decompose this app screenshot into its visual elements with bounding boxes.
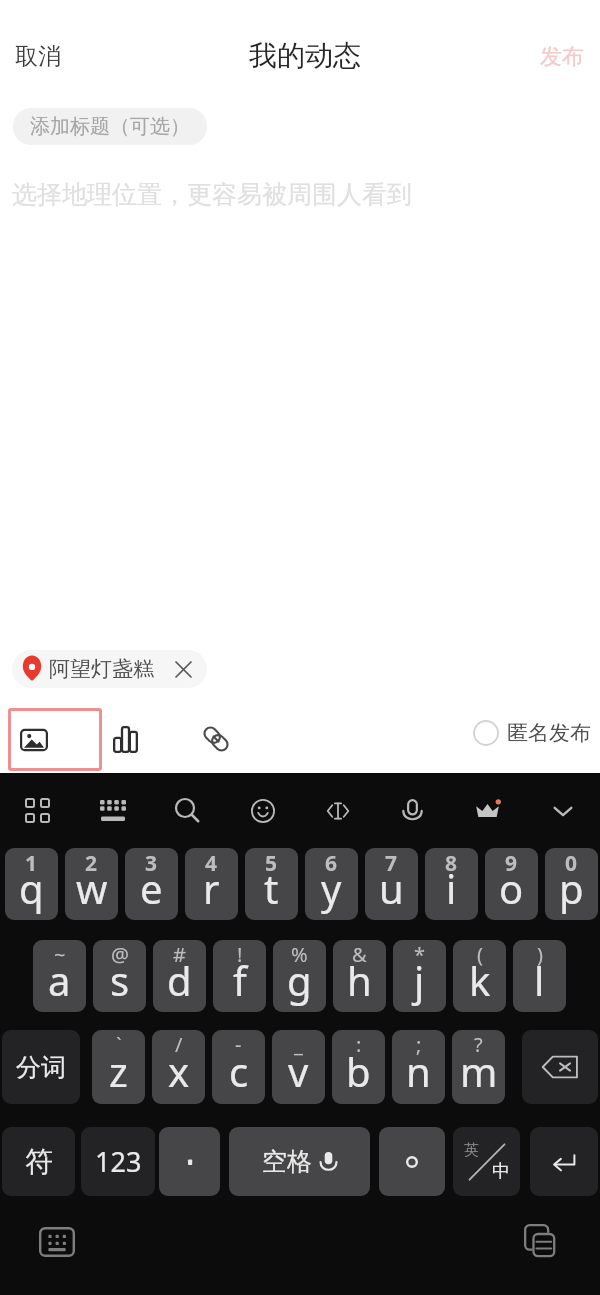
staticText: & xyxy=(352,941,367,968)
staticText: @ xyxy=(111,941,129,968)
button[interactable]: Search xyxy=(150,773,225,848)
staticText: b xyxy=(346,1044,371,1098)
staticText: # xyxy=(173,941,186,968)
staticText: n xyxy=(406,1044,431,1098)
staticText: 发布 xyxy=(540,43,584,71)
button[interactable]: ; xyxy=(392,1030,445,1104)
staticText: u xyxy=(379,861,404,915)
staticText: 3 xyxy=(145,849,158,878)
button[interactable]: @ xyxy=(93,940,146,1012)
staticText: r xyxy=(203,861,220,915)
button[interactable]: Enter xyxy=(530,1127,598,1196)
button[interactable]: Backspace xyxy=(522,1030,598,1104)
other: Remove location xyxy=(176,662,191,677)
staticText: q xyxy=(19,861,44,915)
button[interactable]: ! xyxy=(213,940,266,1012)
button[interactable]: 9 xyxy=(485,848,538,920)
button[interactable]: Emoji xyxy=(225,773,300,848)
staticText: 123 xyxy=(95,1143,142,1180)
button[interactable]: ) xyxy=(513,940,566,1012)
staticText: ~ xyxy=(54,941,66,968)
staticText: 中 xyxy=(492,1160,510,1183)
staticText: ( xyxy=(477,941,483,968)
button[interactable]: * xyxy=(393,940,446,1012)
button[interactable]: # xyxy=(153,940,206,1012)
staticText: d xyxy=(167,953,192,1007)
staticText: 5 xyxy=(265,849,278,878)
staticText: 2 xyxy=(85,849,98,878)
staticText: z xyxy=(109,1044,128,1098)
button[interactable]: 添加标题（可选） xyxy=(13,108,207,145)
staticText: w xyxy=(76,861,108,915)
button[interactable]: 123 xyxy=(81,1127,155,1196)
button[interactable]: ~ xyxy=(33,940,86,1012)
button[interactable]: 8 xyxy=(425,848,478,920)
button[interactable]: _ xyxy=(272,1030,325,1104)
staticText: ; xyxy=(416,1031,422,1058)
button[interactable]: 1 xyxy=(5,848,58,920)
staticText: 添加标题（可选） xyxy=(30,114,190,139)
button[interactable]: 取消 xyxy=(9,37,67,76)
staticText: h xyxy=(347,953,372,1007)
staticText: 匿名发布 xyxy=(507,720,591,746)
staticText: c xyxy=(229,1044,249,1098)
button[interactable]: 发布 xyxy=(534,38,590,76)
button[interactable]: Link xyxy=(194,714,238,764)
button[interactable]: : xyxy=(332,1030,385,1104)
staticText: : xyxy=(356,1031,362,1058)
button[interactable]: & xyxy=(333,940,386,1012)
staticText: 我的动态 xyxy=(249,38,361,73)
staticText: e xyxy=(140,861,163,915)
button[interactable]: 符 xyxy=(2,1127,75,1196)
staticText: t xyxy=(264,861,279,915)
button[interactable]: ( xyxy=(453,940,506,1012)
button[interactable]: Apps xyxy=(0,773,75,848)
staticText: 6 xyxy=(325,849,338,878)
button[interactable]: Poll xyxy=(104,715,146,763)
staticText: 英 xyxy=(464,1141,479,1160)
staticText: y xyxy=(321,861,342,915)
button[interactable]: Voice input xyxy=(375,773,450,848)
staticText: 4 xyxy=(205,849,218,878)
button[interactable]: 空格 xyxy=(229,1127,370,1196)
button[interactable]: 0 xyxy=(545,848,598,920)
button[interactable]: 6 xyxy=(305,848,358,920)
button[interactable]: Add image xyxy=(8,708,102,771)
staticText: 空格 xyxy=(262,1146,312,1177)
staticText: j xyxy=(414,953,425,1007)
button[interactable]: 7 xyxy=(365,848,418,920)
staticText: a xyxy=(48,953,71,1007)
button[interactable]: Comma xyxy=(159,1127,220,1196)
button[interactable]: ` xyxy=(92,1030,145,1104)
staticText: m xyxy=(460,1044,498,1098)
staticText: 选择地理位置，更容易被周围人看到 xyxy=(12,179,412,210)
staticText: _ xyxy=(294,1031,303,1058)
staticText: k xyxy=(469,953,491,1007)
button[interactable]: % xyxy=(273,940,326,1012)
button[interactable]: 4 xyxy=(185,848,238,920)
staticText: 取消 xyxy=(15,42,61,71)
button[interactable]: 3 xyxy=(125,848,178,920)
button[interactable]: Text tools xyxy=(300,773,375,848)
button[interactable]: Period xyxy=(379,1127,445,1196)
button[interactable]: 分词 xyxy=(2,1030,80,1104)
staticText: ) xyxy=(537,941,543,968)
button[interactable]: Clipboard xyxy=(512,1217,568,1265)
button[interactable]: Switch input language xyxy=(453,1127,520,1196)
staticText: - xyxy=(235,1031,242,1058)
button[interactable]: Membership xyxy=(450,773,525,848)
button[interactable]: ? xyxy=(452,1030,505,1104)
button[interactable]: Keyboard layout xyxy=(75,773,150,848)
button[interactable]: Collapse keyboard xyxy=(525,773,600,848)
button[interactable]: - xyxy=(212,1030,265,1104)
button[interactable]: 匿名发布 xyxy=(467,714,597,752)
button[interactable]: Change keyboard xyxy=(29,1219,85,1265)
button[interactable]: 2 xyxy=(65,848,118,920)
staticText: ` xyxy=(116,1031,122,1058)
staticText: ? xyxy=(474,1031,483,1058)
staticText: 1 xyxy=(25,849,38,878)
button[interactable]: 阿望灯盏糕 xyxy=(12,650,207,688)
button[interactable]: / xyxy=(152,1030,205,1104)
staticText: s xyxy=(110,953,130,1007)
button[interactable]: 5 xyxy=(245,848,298,920)
